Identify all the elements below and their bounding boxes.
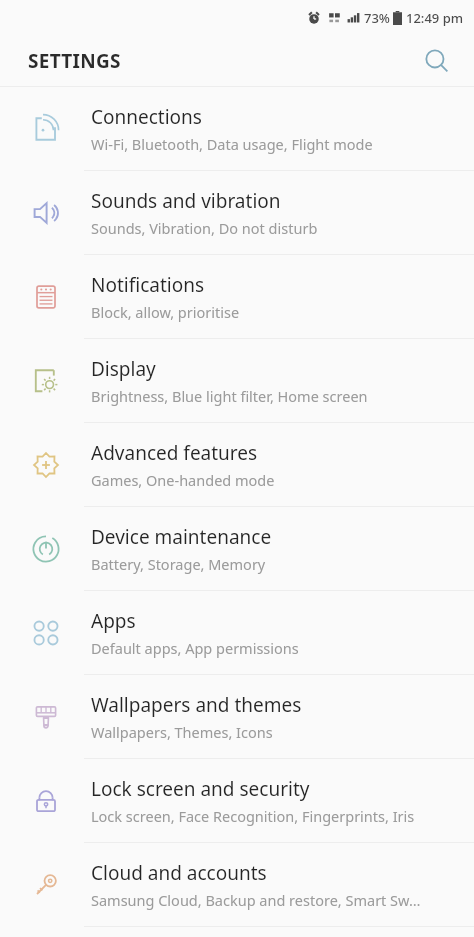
staticText: Wi-Fi, Bluetooth, Data usage, Flight mod… [91,134,373,154]
button[interactable]: Lock screen and security [0,759,474,842]
staticText: Device maintenance [91,524,272,550]
staticText: Brightness, Blue light filter, Home scre… [91,386,368,406]
staticText: Connections [91,104,202,130]
button[interactable]: Display [0,339,474,422]
staticText: SETTINGS [28,48,121,74]
staticText: Apps [91,608,136,634]
button[interactable]: Connections [0,87,474,170]
button[interactable]: Advanced features [0,423,474,506]
staticText: Sounds and vibration [91,188,281,214]
staticText: 12:49 pm [406,9,464,27]
staticText: Wallpapers, Themes, Icons [91,722,273,742]
staticText: Block, allow, prioritise [91,302,240,322]
button[interactable]: Search [414,38,460,84]
button[interactable]: Apps [0,591,474,674]
staticText: Default apps, App permissions [91,638,299,658]
staticText: Games, One-handed mode [91,470,275,490]
staticText: Notifications [91,272,205,298]
staticText: Advanced features [91,440,258,466]
button[interactable]: Notifications [0,255,474,338]
staticText: Wallpapers and themes [91,692,302,718]
staticText: Lock screen, Face Recognition, Fingerpri… [91,806,415,826]
button[interactable]: Sounds and vibration [0,171,474,254]
staticText: Sounds, Vibration, Do not disturb [91,218,318,238]
button[interactable]: Cloud and accounts [0,843,474,926]
staticText: Lock screen and security [91,776,310,802]
staticText: Samsung Cloud, Backup and restore, Smart… [91,890,421,910]
staticText: Display [91,356,156,382]
button[interactable]: Device maintenance [0,507,474,590]
staticText: Battery, Storage, Memory [91,554,266,574]
staticText: 73% [364,9,390,27]
staticText: Cloud and accounts [91,860,267,886]
button[interactable]: Wallpapers and themes [0,675,474,758]
